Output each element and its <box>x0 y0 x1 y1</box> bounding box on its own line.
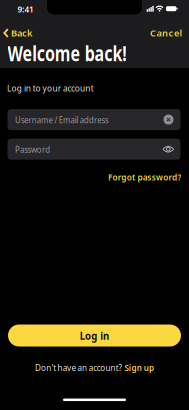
staticText: Log in to your account <box>7 82 104 94</box>
staticText: Username / Email address <box>15 113 126 126</box>
staticText: 9:41 <box>16 3 34 15</box>
button[interactable]: Log in <box>8 324 181 346</box>
staticText: Sign up <box>129 361 163 374</box>
button[interactable]: Forgot password? <box>99 171 181 183</box>
button[interactable]: Cancel <box>150 27 182 39</box>
staticText: Password <box>15 143 57 155</box>
button[interactable]: Sign up <box>129 361 163 374</box>
button[interactable]: Username / Email address <box>7 109 180 130</box>
button[interactable]: Password <box>7 139 180 160</box>
staticText: Don't have an account? <box>26 361 126 374</box>
staticText: Back <box>11 27 32 39</box>
staticText: Forgot password? <box>99 171 181 183</box>
staticText: Welcome back! <box>7 39 166 67</box>
button[interactable]: Back <box>3 27 32 39</box>
staticText: Log in <box>78 328 111 343</box>
staticText: Cancel <box>150 27 182 39</box>
